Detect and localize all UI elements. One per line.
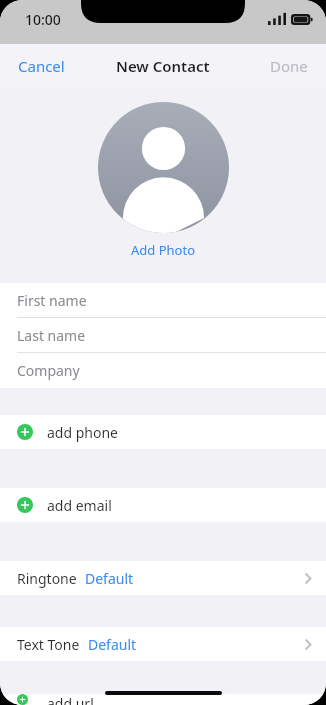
staticText: Company	[17, 361, 80, 380]
staticText: Last name	[17, 326, 86, 345]
button[interactable]: Done	[252, 46, 326, 86]
staticText: Text Tone	[17, 635, 80, 654]
button[interactable]: Add Photo	[98, 102, 229, 233]
staticText: add email	[47, 496, 112, 515]
button[interactable]: Text Tone	[0, 627, 326, 661]
button[interactable]: Company	[0, 353, 326, 388]
button[interactable]: Ringtone	[0, 561, 326, 595]
staticText: Default	[85, 569, 134, 588]
staticText: First name	[17, 291, 87, 310]
button[interactable]: First name	[0, 283, 326, 318]
button[interactable]: add email	[0, 488, 326, 522]
staticText: 10:00	[25, 10, 61, 29]
staticText: Ringtone	[17, 569, 77, 588]
staticText: Default	[88, 635, 137, 654]
staticText: add url	[47, 694, 94, 705]
button[interactable]: add url	[0, 694, 326, 705]
button[interactable]: Last name	[0, 318, 326, 353]
staticText: add phone	[47, 423, 118, 442]
staticText: Done	[270, 56, 308, 76]
button[interactable]: Add Photo	[121, 239, 205, 261]
button[interactable]: Cancel	[0, 46, 83, 86]
staticText: Add Photo	[131, 241, 195, 259]
staticText: Cancel	[18, 56, 65, 76]
button[interactable]: add phone	[0, 415, 326, 449]
staticText: New Contact	[116, 56, 210, 76]
